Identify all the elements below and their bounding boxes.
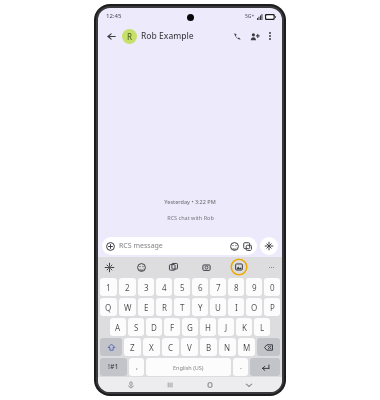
button[interactable]: Shift [100,338,122,356]
button[interactable]: V [181,338,198,356]
button[interactable]: AI assist [101,259,118,276]
staticText: 5G+ [245,13,255,20]
button[interactable]: G [182,318,198,336]
button[interactable]: L [254,318,270,336]
staticText: S [134,322,139,333]
staticText: G [187,322,193,333]
staticText: P [270,302,275,313]
button[interactable]: A [110,318,126,336]
button[interactable]: H [200,318,216,336]
staticText: I [235,302,238,313]
button[interactable]: Q [100,298,117,316]
staticText: R [127,31,133,42]
button[interactable]: C [162,338,179,356]
button[interactable]: T [174,298,190,316]
button[interactable]: 7 [210,278,226,296]
staticText: 1 [106,282,111,293]
button[interactable]: J [218,318,234,336]
button[interactable]: 3 [138,278,154,296]
button[interactable]: 6 [192,278,208,296]
button[interactable]: More [263,259,279,275]
button[interactable]: , [129,358,144,376]
button[interactable]: I [228,298,244,316]
staticText: D [151,322,157,333]
staticText: R [162,302,167,313]
staticText: Rob Example [141,30,194,42]
staticText: A [115,322,121,333]
button[interactable]: F [164,318,180,336]
staticText: English (US) [173,364,204,371]
staticText: J [225,322,228,333]
button[interactable]: W [119,298,136,316]
staticText: . [240,362,242,372]
button[interactable]: Hide keyboard [242,378,256,392]
button[interactable]: 2 [119,278,136,296]
button[interactable]: Home [203,378,217,392]
button[interactable]: Voice input [124,378,138,392]
staticText: M [243,342,251,353]
staticText: 2 [125,282,130,293]
staticText: T [180,302,185,313]
button[interactable]: 0 [264,278,280,296]
button[interactable]: R [122,29,137,44]
staticText: 7 [216,282,221,293]
staticText: 4 [162,282,167,293]
button[interactable]: 5 [174,278,190,296]
button[interactable]: Camera [198,259,215,276]
button[interactable]: Emoji [228,240,240,252]
staticText: O [251,302,258,313]
button[interactable]: !#1 [100,358,127,376]
button[interactable]: Backspace [257,338,280,356]
button[interactable]: 4 [156,278,172,296]
button[interactable]: Emoji [133,259,150,276]
button[interactable]: Stickers [241,240,253,252]
button[interactable]: Back [103,28,119,44]
staticText: B [206,342,212,353]
button[interactable]: More options [263,29,277,43]
button[interactable]: Call [229,28,246,45]
button[interactable]: O [246,298,262,316]
staticText: Y [198,302,203,313]
button[interactable]: R [156,298,172,316]
button[interactable]: U [210,298,226,316]
button[interactable]: M [238,338,255,356]
staticText: W [124,302,132,313]
staticText: 0 [270,282,275,293]
button[interactable]: K [236,318,252,336]
button[interactable]: Recents [163,378,177,392]
button[interactable]: Y [192,298,208,316]
button[interactable]: Enter [250,358,280,376]
staticText: H [205,322,211,333]
button[interactable]: X [143,338,160,356]
button[interactable]: Voice [260,237,278,255]
staticText: F [170,322,175,333]
staticText: , [136,362,138,372]
button[interactable]: S [128,318,144,336]
button[interactable]: D [146,318,162,336]
button[interactable]: GIF [165,259,182,276]
button[interactable]: RCS message [102,237,257,255]
button[interactable]: B [200,338,217,356]
button[interactable]: Gallery [230,258,248,276]
staticText: L [260,322,265,333]
staticText: 9 [252,282,257,293]
button[interactable]: N [219,338,236,356]
button[interactable]: . [233,358,248,376]
button[interactable]: English (US) [146,358,231,376]
staticText: 12:45 [106,12,122,20]
staticText: Z [130,342,135,353]
staticText: K [242,322,247,333]
staticText: 3 [144,282,149,293]
staticText: X [149,342,154,353]
button[interactable]: Add people [246,28,263,45]
button[interactable]: Rob Example [141,24,229,48]
staticText: U [215,302,221,313]
button[interactable]: P [264,298,280,316]
button[interactable]: Z [124,338,141,356]
button[interactable]: E [138,298,154,316]
staticText: N [224,342,231,353]
staticText: Q [105,302,112,313]
button[interactable]: 9 [246,278,262,296]
button[interactable]: 1 [100,278,117,296]
button[interactable]: 8 [228,278,244,296]
